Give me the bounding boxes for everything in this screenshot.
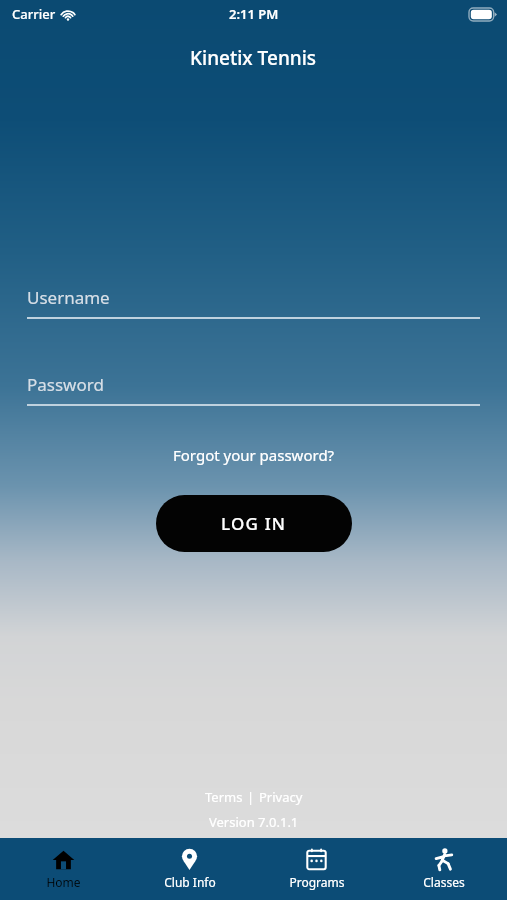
staticText: Kinetix Tennis <box>190 45 317 71</box>
staticText: LOG IN <box>221 512 287 535</box>
staticText: | <box>247 788 255 806</box>
other: Programs <box>305 848 328 871</box>
other: Club Info <box>178 848 201 871</box>
button[interactable]: Home <box>0 838 126 900</box>
staticText: Club Info <box>164 874 216 890</box>
button[interactable]: LOG IN <box>156 495 352 552</box>
staticText: Carrier <box>12 5 56 23</box>
button[interactable]: Privacy <box>255 786 307 808</box>
staticText: Home <box>46 874 81 890</box>
staticText: Version 7.0.1.1 <box>209 813 299 831</box>
staticText: Classes <box>423 874 465 890</box>
button[interactable]: Forgot your password? <box>167 442 341 468</box>
staticText: Username <box>27 286 110 309</box>
staticText: 2:11 PM <box>229 5 279 23</box>
button[interactable]: Username <box>27 286 480 319</box>
button[interactable]: Programs <box>253 838 380 900</box>
button[interactable]: Classes <box>380 838 507 900</box>
button[interactable]: Club Info <box>126 838 253 900</box>
staticText: Password <box>27 373 104 396</box>
other: Home <box>52 848 75 871</box>
staticText: Programs <box>289 874 345 890</box>
button[interactable]: Terms <box>201 786 247 808</box>
button[interactable]: Password <box>27 373 480 406</box>
other: Classes <box>432 848 455 871</box>
